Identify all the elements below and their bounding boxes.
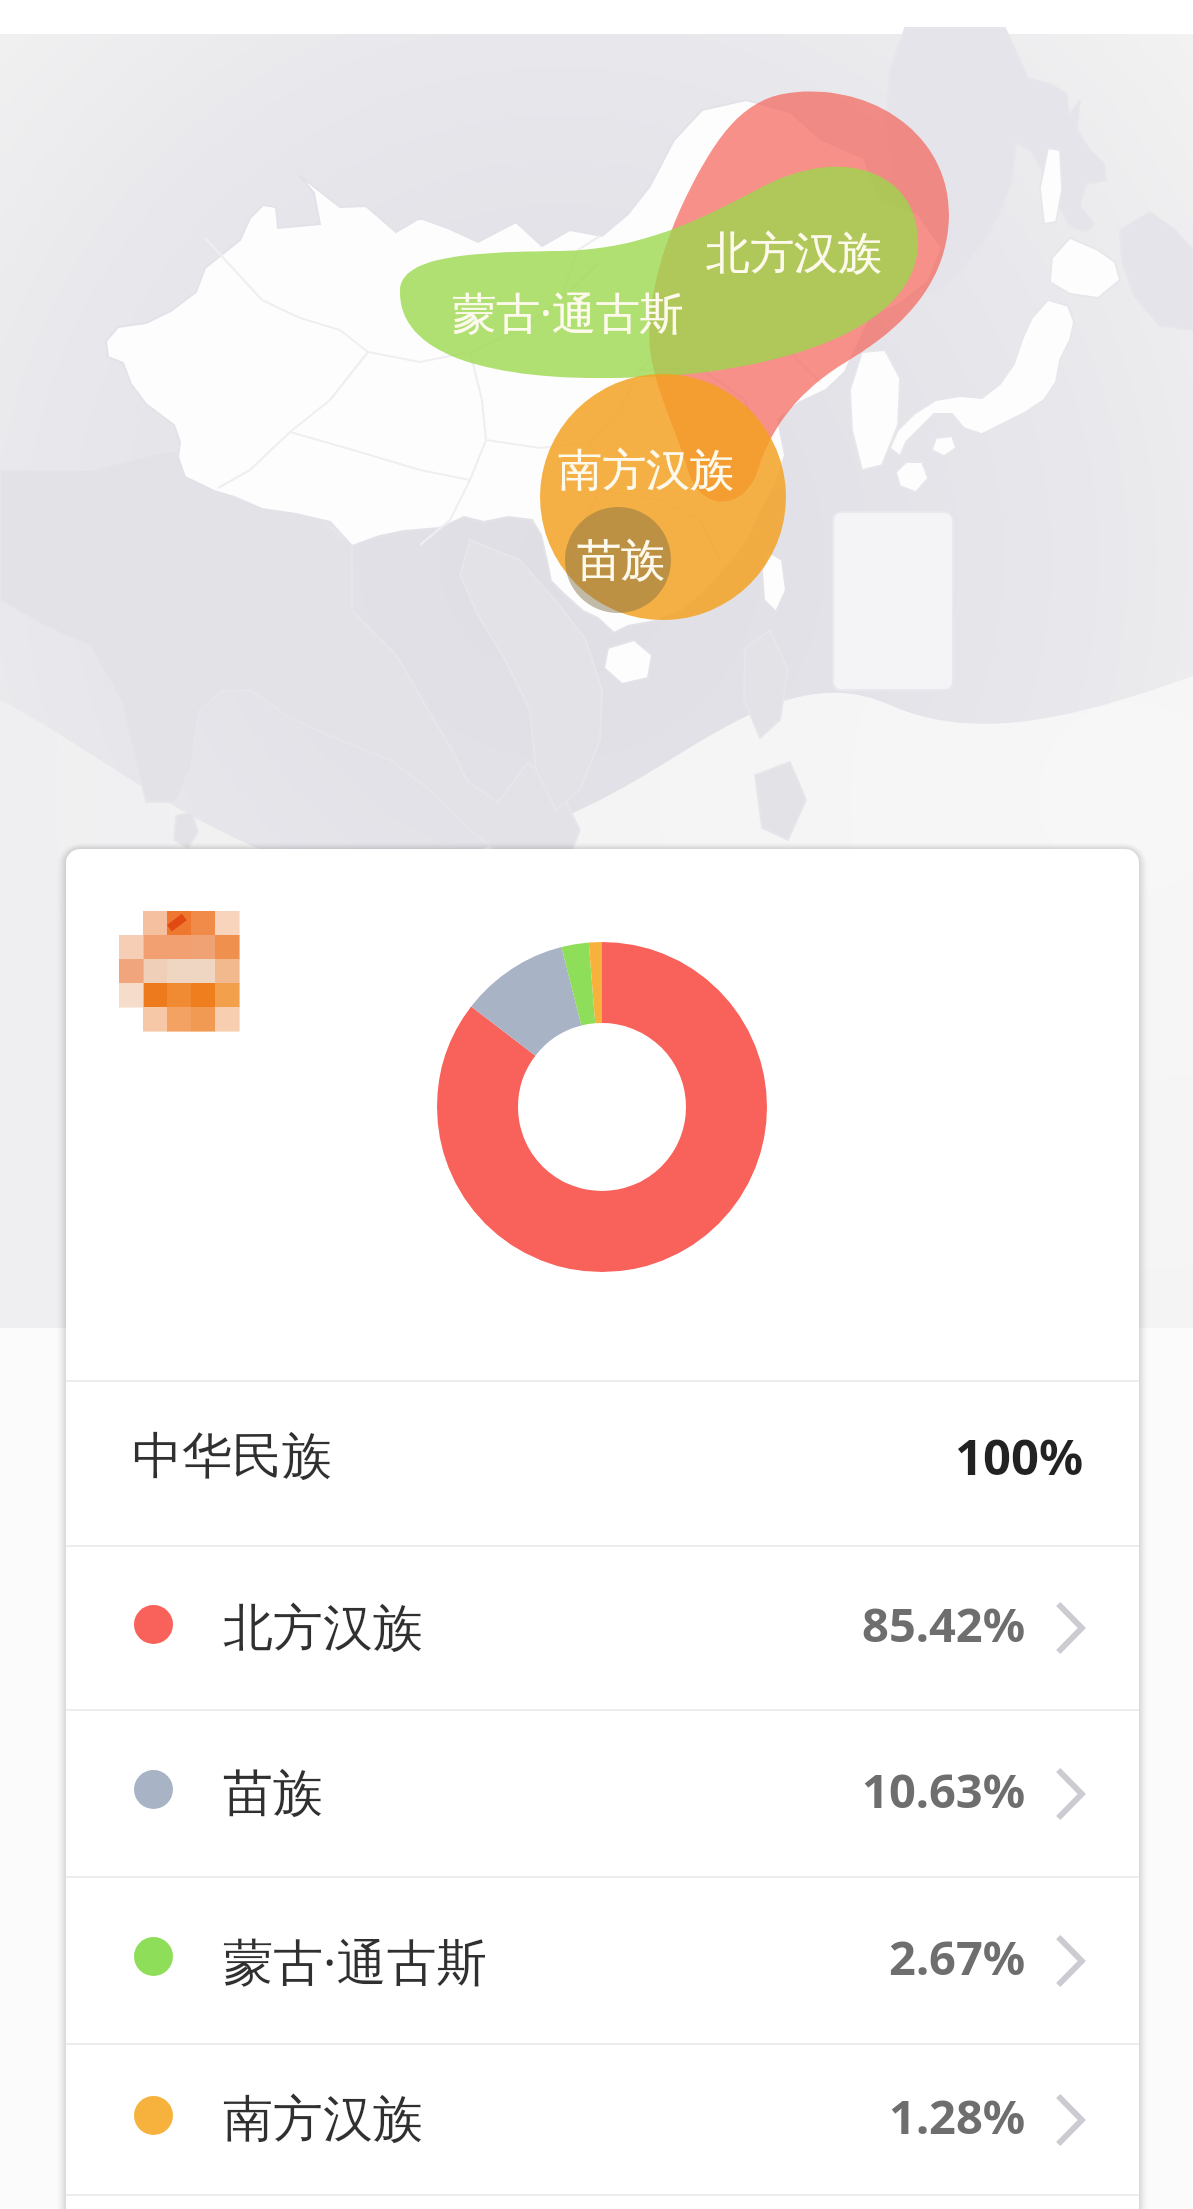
staticText: 北方汉族 [223,1597,423,1660]
staticText: 100% [955,1423,1084,1490]
staticText: 中华民族 [132,1425,332,1488]
button[interactable]: 苗族 [66,1711,1139,1876]
staticText: 85.42% [862,1592,1026,1656]
button[interactable]: 北方汉族 [66,1547,1139,1709]
staticText: 北方汉族 [706,226,882,281]
staticText: 苗族 [223,1762,323,1825]
button[interactable]: 祖源构成环形图 [66,849,1139,1380]
button[interactable]: 祖源地图 [0,0,1193,1328]
staticText: 南方汉族 [223,2088,423,2151]
staticText: 2.67% [889,1925,1026,1989]
staticText: 蒙古·通古斯 [452,282,684,342]
button[interactable]: 蒙古·通古斯 [66,1878,1139,2043]
staticText: 南方汉族 [558,443,734,498]
staticText: 苗族 [577,533,665,588]
staticText: 10.63% [862,1758,1026,1822]
staticText: 蒙古·通古斯 [223,1927,487,1995]
button[interactable]: 南方汉族 [66,2045,1139,2194]
button[interactable]: 中华民族 [66,1382,1139,1545]
staticText: 1.28% [889,2084,1026,2148]
